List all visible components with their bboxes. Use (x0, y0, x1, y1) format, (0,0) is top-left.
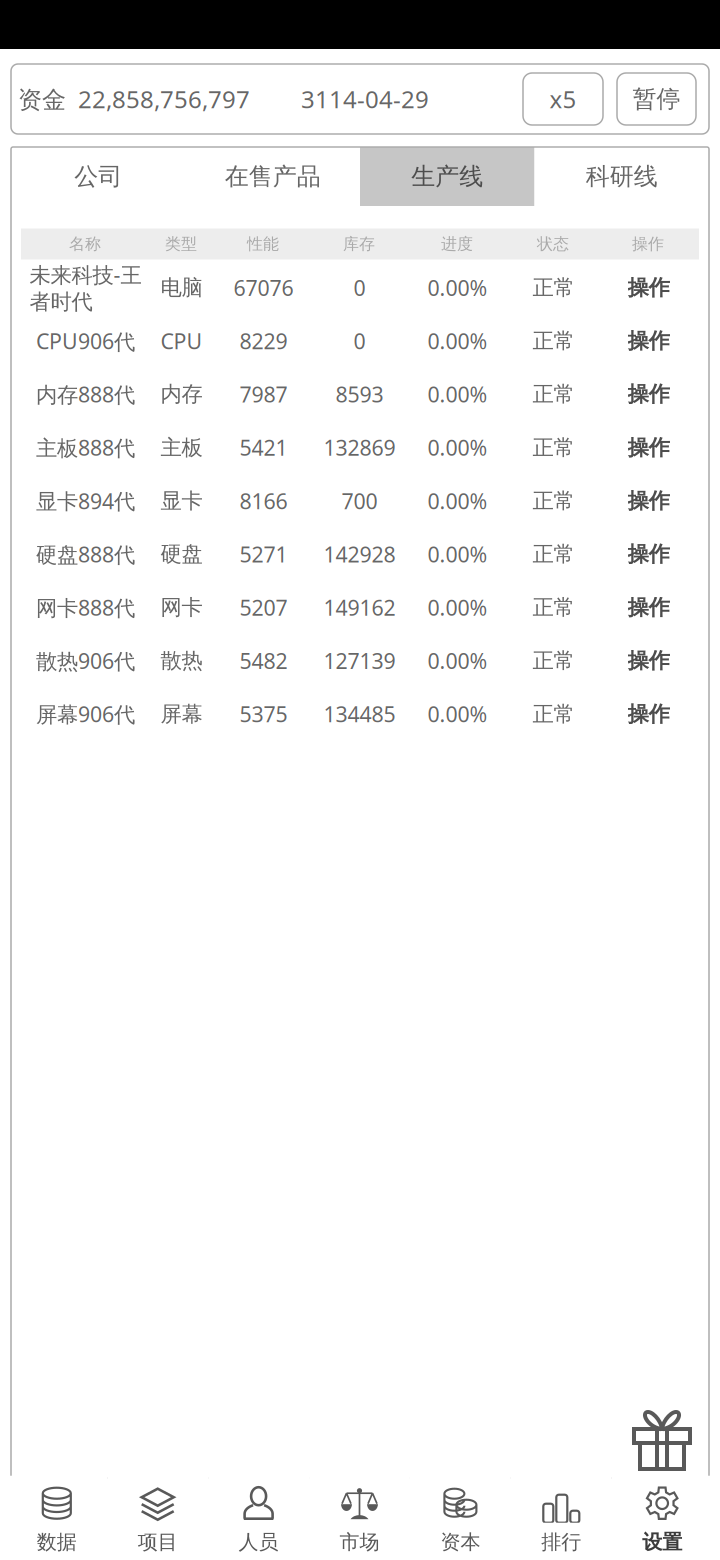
staticText: 操作 (627, 328, 669, 354)
staticText: 149162 (323, 593, 395, 622)
staticText: 正常 (532, 434, 574, 461)
staticText: 主板888代 (36, 433, 135, 462)
staticText: 设置 (642, 1530, 682, 1554)
button[interactable]: 操作 (588, 368, 708, 421)
button[interactable]: 礼物 (632, 1410, 692, 1470)
staticText: 操作 (627, 274, 669, 301)
staticText: 8166 (239, 487, 287, 515)
staticText: 项目 (138, 1530, 178, 1554)
staticText: 0.00% (427, 700, 487, 728)
staticText: 库存 (343, 234, 375, 254)
staticText: 暂停 (632, 84, 680, 114)
staticText: 公司 (74, 162, 122, 191)
staticText: 0.00% (427, 380, 487, 408)
staticText: 资金 22,858,756,797 (18, 83, 250, 115)
staticText: 内存888代 (36, 380, 135, 408)
staticText: 5421 (239, 433, 287, 462)
button[interactable]: 操作 (588, 687, 708, 741)
button[interactable]: 市场 (309, 1478, 410, 1560)
staticText: 主板 (160, 434, 202, 461)
staticText: 正常 (532, 488, 574, 514)
staticText: 名称 (69, 234, 101, 254)
staticText: 硬盘888代 (36, 540, 135, 568)
staticText: CPU906代 (36, 327, 135, 355)
staticText: 电脑 (160, 274, 202, 301)
staticText: 5482 (239, 647, 287, 675)
staticText: 0.00% (427, 433, 487, 462)
staticText: 性能 (247, 234, 279, 254)
staticText: 127139 (323, 647, 395, 675)
staticText: 0.00% (427, 593, 487, 622)
staticText: 进度 (441, 234, 473, 254)
button[interactable]: 操作 (588, 314, 708, 368)
button[interactable]: 操作 (588, 474, 708, 527)
staticText: 类型 (165, 234, 197, 254)
staticText: 正常 (532, 328, 574, 354)
staticText: 内存 (160, 381, 202, 407)
staticText: 在售产品 (225, 162, 321, 191)
staticText: 数据 (37, 1530, 77, 1554)
staticText: 操作 (627, 701, 669, 727)
staticText: CPU (160, 327, 202, 355)
staticText: 显卡 (160, 488, 202, 514)
staticText: 操作 (632, 234, 664, 254)
staticText: 0.00% (427, 327, 487, 355)
staticText: 7987 (239, 380, 287, 408)
button[interactable]: 排行 (511, 1478, 612, 1560)
staticText: 132869 (323, 433, 395, 462)
button[interactable]: 在售产品 (185, 147, 360, 206)
staticText: 0.00% (427, 647, 487, 675)
staticText: 0.00% (427, 487, 487, 515)
button[interactable]: 操作 (588, 581, 708, 634)
staticText: 正常 (532, 594, 574, 620)
staticText: 散热906代 (36, 647, 135, 675)
staticText: 操作 (627, 648, 669, 674)
staticText: 生产线 (411, 162, 483, 191)
staticText: 科研线 (586, 162, 658, 191)
staticText: 人员 (239, 1530, 279, 1554)
staticText: 状态 (537, 234, 569, 254)
staticText: 正常 (532, 541, 574, 567)
button[interactable]: 科研线 (534, 147, 709, 206)
staticText: 134485 (323, 700, 395, 728)
staticText: 5207 (239, 593, 287, 622)
button[interactable]: 项目 (107, 1478, 208, 1560)
button[interactable]: 公司 (11, 147, 185, 206)
staticText: 网卡 (160, 594, 202, 620)
staticText: 排行 (541, 1530, 581, 1554)
staticText: 8593 (335, 380, 383, 408)
staticText: 操作 (627, 541, 669, 567)
staticText: 3114-04-29 (301, 83, 429, 115)
button[interactable]: 操作 (588, 527, 708, 581)
staticText: 700 (341, 487, 377, 515)
staticText: 未来科技-王者时代 (29, 260, 141, 315)
button[interactable]: 生产线 (360, 147, 534, 206)
staticText: 0 (353, 273, 365, 302)
staticText: 正常 (532, 381, 574, 407)
button[interactable]: 操作 (588, 634, 708, 687)
staticText: 正常 (532, 701, 574, 727)
button[interactable]: 人员 (208, 1478, 309, 1560)
staticText: 操作 (627, 434, 669, 461)
staticText: 资本 (440, 1530, 480, 1554)
staticText: 0 (353, 327, 365, 355)
staticText: 5375 (239, 700, 287, 728)
button[interactable]: 暂停 (617, 73, 696, 125)
staticText: 屏幕 (160, 701, 202, 727)
button[interactable]: x5 (523, 73, 603, 125)
staticText: 硬盘 (160, 541, 202, 567)
button[interactable]: 操作 (588, 421, 708, 474)
staticText: 67076 (233, 273, 293, 302)
button[interactable]: 资本 (410, 1478, 511, 1560)
staticText: 屏幕906代 (36, 700, 135, 728)
staticText: 8229 (239, 327, 287, 355)
staticText: 正常 (532, 274, 574, 301)
button[interactable]: 数据 (6, 1478, 107, 1560)
button[interactable]: 设置 (612, 1478, 713, 1560)
button[interactable]: 操作 (588, 261, 708, 314)
staticText: 操作 (627, 488, 669, 514)
staticText: 142928 (323, 540, 395, 568)
staticText: x5 (549, 83, 576, 115)
staticText: 0.00% (427, 273, 487, 302)
staticText: 操作 (627, 594, 669, 620)
